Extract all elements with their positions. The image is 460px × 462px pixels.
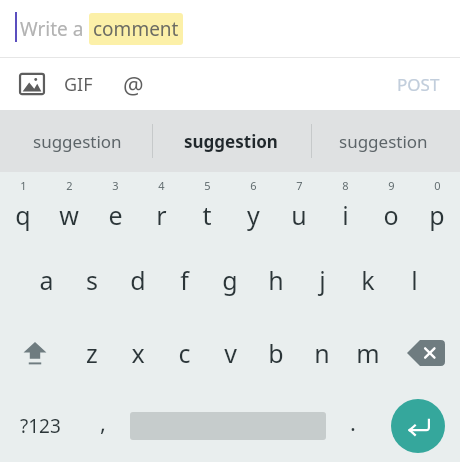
staticText: 2	[66, 178, 73, 193]
button[interactable]: m	[345, 316, 391, 389]
button[interactable]: Enter	[376, 389, 460, 462]
staticText: o	[383, 198, 399, 232]
button[interactable]: Write a	[0, 0, 460, 57]
button[interactable]: z	[69, 316, 115, 389]
button[interactable]: Backspace	[391, 316, 460, 389]
button[interactable]: 4	[138, 172, 184, 244]
staticText: suggestion	[33, 130, 122, 153]
button[interactable]: v	[207, 316, 253, 389]
button[interactable]: k	[345, 244, 391, 316]
staticText: suggestion	[339, 130, 428, 153]
staticText: 8	[342, 178, 349, 193]
button[interactable]: n	[299, 316, 345, 389]
button[interactable]: .	[330, 389, 376, 462]
staticText: 4	[158, 178, 165, 193]
staticText: w	[59, 198, 79, 232]
staticText: 1	[20, 178, 27, 193]
button[interactable]: 1	[0, 172, 46, 244]
staticText: v	[224, 336, 237, 370]
button[interactable]: Space	[126, 389, 330, 462]
button[interactable]: 5	[184, 172, 230, 244]
staticText: comment	[93, 16, 179, 42]
staticText: s	[86, 263, 98, 297]
staticText: 5	[204, 178, 211, 193]
staticText: POST	[397, 73, 440, 96]
button[interactable]: 8	[322, 172, 368, 244]
staticText: f	[180, 263, 189, 297]
button[interactable]: 7	[276, 172, 322, 244]
button[interactable]: suggestion	[0, 110, 154, 172]
button[interactable]: Add image	[12, 64, 52, 104]
button[interactable]: f	[161, 244, 207, 316]
button[interactable]: s	[69, 244, 115, 316]
button[interactable]: 9	[368, 172, 414, 244]
staticText: t	[202, 198, 212, 232]
button[interactable]: 3	[92, 172, 138, 244]
staticText: l	[411, 263, 418, 297]
staticText: @	[123, 69, 144, 100]
button[interactable]: c	[161, 316, 207, 389]
staticText: GIF	[64, 72, 93, 97]
button[interactable]: Mention	[113, 64, 153, 104]
button[interactable]: POST	[385, 65, 452, 104]
staticText: ?123	[20, 413, 61, 439]
staticText: ,	[100, 407, 106, 437]
staticText: z	[86, 336, 98, 370]
button[interactable]: Shift	[0, 316, 69, 389]
staticText: d	[130, 263, 146, 297]
button[interactable]: l	[391, 244, 437, 316]
button[interactable]: 6	[230, 172, 276, 244]
button[interactable]: x	[115, 316, 161, 389]
button[interactable]: ?123	[0, 389, 80, 462]
staticText: 6	[250, 178, 257, 193]
button[interactable]: j	[299, 244, 345, 316]
staticText: a	[39, 263, 54, 297]
staticText: q	[15, 198, 31, 232]
button[interactable]: suggestion	[307, 110, 460, 172]
staticText: x	[131, 336, 145, 370]
staticText: r	[156, 198, 167, 232]
staticText: suggestion	[184, 130, 278, 153]
staticText: g	[222, 263, 238, 297]
staticText: b	[268, 336, 284, 370]
staticText: n	[314, 336, 330, 370]
button[interactable]: d	[115, 244, 161, 316]
staticText: .	[350, 407, 356, 437]
staticText: j	[319, 263, 326, 297]
staticText: 0	[434, 178, 441, 193]
button[interactable]: 2	[46, 172, 92, 244]
staticText: i	[342, 198, 349, 232]
button[interactable]: g	[207, 244, 253, 316]
button[interactable]: GIF	[64, 64, 93, 104]
staticText: 7	[296, 178, 303, 193]
staticText: u	[291, 198, 307, 232]
button[interactable]: ,	[80, 389, 126, 462]
staticText: p	[429, 198, 445, 232]
button[interactable]: suggestion	[154, 110, 307, 172]
staticText: y	[247, 198, 260, 232]
button[interactable]: a	[23, 244, 69, 316]
button[interactable]: b	[253, 316, 299, 389]
button[interactable]: 0	[414, 172, 460, 244]
staticText: Write a	[20, 16, 89, 42]
staticText: 9	[388, 178, 395, 193]
staticText: m	[356, 336, 380, 370]
staticText: 3	[112, 178, 119, 193]
staticText: c	[178, 336, 191, 370]
staticText: e	[108, 198, 123, 232]
staticText: k	[361, 263, 375, 297]
button[interactable]: h	[253, 244, 299, 316]
staticText: h	[268, 263, 284, 297]
